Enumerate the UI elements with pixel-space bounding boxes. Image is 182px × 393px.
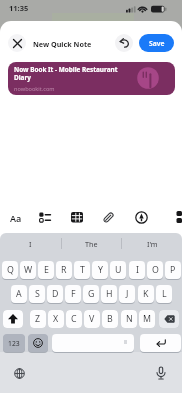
button[interactable]: X <box>48 310 64 328</box>
button[interactable] <box>101 209 116 225</box>
button[interactable]: Aa <box>6 210 26 225</box>
staticText: M <box>143 313 151 325</box>
button[interactable]: B <box>102 310 118 328</box>
button[interactable]: G <box>83 285 99 303</box>
staticText: P <box>170 264 176 276</box>
staticText: J <box>126 288 129 300</box>
staticText: B <box>107 313 113 325</box>
button[interactable]: D <box>47 285 63 303</box>
staticText: nowbookit.com <box>14 85 55 93</box>
button[interactable]: J <box>119 285 135 303</box>
button[interactable]: U <box>110 261 126 279</box>
staticText: D <box>52 288 59 300</box>
button[interactable] <box>159 310 179 328</box>
staticText: U <box>115 264 122 276</box>
staticText: X <box>53 313 59 325</box>
button[interactable]: I'm <box>122 234 182 253</box>
button[interactable]: S <box>29 285 45 303</box>
button[interactable] <box>8 34 26 52</box>
staticText: L <box>162 288 167 300</box>
staticText: Y <box>98 264 103 276</box>
button[interactable]: K <box>138 285 154 303</box>
staticText: K <box>143 288 149 300</box>
button[interactable]: The <box>61 234 121 253</box>
button[interactable]: Save <box>139 34 174 52</box>
staticText: Diary <box>14 73 31 82</box>
staticText: 123 <box>8 339 20 348</box>
button[interactable]: C <box>66 310 82 328</box>
staticText: R <box>61 264 67 276</box>
staticText: T <box>80 264 85 276</box>
staticText: Z <box>35 313 41 325</box>
button[interactable]: Now Book It - Mobile Restaurant <box>8 62 175 95</box>
button[interactable]: F <box>65 285 81 303</box>
button[interactable]: O <box>147 261 163 279</box>
button[interactable]: P <box>165 261 181 279</box>
button[interactable]: 123 <box>3 334 25 352</box>
button[interactable]: I <box>129 261 145 279</box>
staticText: O <box>152 264 159 276</box>
staticText: G <box>88 288 95 300</box>
staticText: I <box>29 239 32 249</box>
staticText: V <box>89 313 95 325</box>
staticText: New Quick Note <box>33 39 92 49</box>
button[interactable]: Z <box>30 310 46 328</box>
staticText: Now Book It - Mobile Restaurant <box>14 65 118 74</box>
staticText: W <box>24 264 33 276</box>
button[interactable]: E <box>38 261 54 279</box>
button[interactable]: T <box>74 261 90 279</box>
button[interactable]: N <box>121 310 137 328</box>
staticText: 11:35 <box>9 3 29 13</box>
button[interactable]: H <box>101 285 117 303</box>
button[interactable]: M <box>139 310 155 328</box>
button[interactable] <box>52 334 134 352</box>
button[interactable] <box>11 365 27 381</box>
staticText: A <box>16 288 22 300</box>
button[interactable] <box>37 210 52 225</box>
staticText: F <box>71 288 76 300</box>
button[interactable]: I <box>0 234 61 253</box>
staticText: H <box>106 288 113 300</box>
button[interactable] <box>69 210 84 225</box>
button[interactable]: A <box>11 285 27 303</box>
button[interactable] <box>3 310 23 328</box>
button[interactable]: Q <box>2 261 18 279</box>
staticText: Q <box>7 264 14 276</box>
staticText: Save <box>149 39 165 48</box>
button[interactable] <box>140 334 181 352</box>
staticText: C <box>71 313 77 325</box>
button[interactable]: R <box>56 261 72 279</box>
button[interactable]: W <box>20 261 36 279</box>
button[interactable] <box>115 34 133 52</box>
button[interactable] <box>153 365 169 381</box>
staticText: Aa <box>10 212 22 224</box>
staticText: I <box>136 264 139 276</box>
button[interactable]: L <box>156 285 172 303</box>
button[interactable]: Y <box>92 261 108 279</box>
button[interactable] <box>134 210 149 225</box>
button[interactable] <box>28 334 48 352</box>
staticText: N <box>126 313 133 325</box>
staticText: The <box>85 239 98 249</box>
button[interactable]: V <box>84 310 100 328</box>
staticText: E <box>44 264 49 276</box>
staticText: I'm <box>147 239 158 249</box>
staticText: S <box>35 288 40 300</box>
